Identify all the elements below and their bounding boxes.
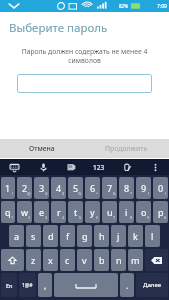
button[interactable]: c <box>60 249 75 271</box>
staticText: 6 <box>96 215 99 220</box>
staticText: 2 <box>22 182 28 194</box>
button[interactable]: 1 <box>1 177 15 199</box>
staticText: 3 <box>39 182 45 194</box>
staticText: w <box>21 206 29 218</box>
button[interactable]: l <box>145 225 160 247</box>
staticText: u <box>107 206 113 218</box>
button[interactable]: i <box>119 201 134 223</box>
button[interactable]: n <box>111 249 126 271</box>
button[interactable]: En <box>1 273 17 297</box>
staticText: 1 <box>5 182 11 194</box>
button[interactable]: z <box>26 249 41 271</box>
button[interactable]: Продолжить <box>84 139 169 158</box>
button[interactable]: Далее <box>136 273 168 297</box>
staticText: k <box>133 230 138 242</box>
button[interactable]: o <box>136 201 151 223</box>
button[interactable]: b <box>94 249 109 271</box>
button[interactable]: 6 <box>85 177 100 199</box>
staticText: j <box>117 230 120 242</box>
staticText: % <box>78 191 82 196</box>
staticText: v <box>82 254 87 266</box>
staticText: s <box>31 230 36 242</box>
button[interactable]: . <box>120 273 134 297</box>
button[interactable]: a <box>9 225 24 247</box>
staticText: En <box>6 282 13 289</box>
staticText: p <box>158 206 164 218</box>
staticText: ^ <box>96 191 99 196</box>
button[interactable]: t <box>68 201 83 223</box>
staticText: 8 <box>130 215 133 220</box>
button[interactable]: w <box>17 201 32 223</box>
button[interactable]: Clipboard <box>113 159 141 175</box>
button[interactable]: 5 <box>68 177 83 199</box>
button[interactable]: 8 <box>119 177 134 199</box>
button[interactable]: 2 <box>17 177 32 199</box>
staticText: d <box>48 230 54 242</box>
button[interactable]: u <box>102 201 117 223</box>
staticText: ( <box>148 191 150 196</box>
staticText: Отмена <box>29 144 55 153</box>
button[interactable]: 1@# <box>19 273 36 297</box>
button[interactable]: q <box>1 201 15 223</box>
button[interactable]: j <box>111 225 126 247</box>
button[interactable]: Voice input <box>29 159 57 175</box>
staticText: h <box>99 230 105 242</box>
button[interactable]: f <box>60 225 75 247</box>
staticText: Далее <box>143 281 162 289</box>
button[interactable] <box>17 74 152 93</box>
button[interactable]: 3 <box>34 177 49 199</box>
staticText: n <box>116 254 122 266</box>
staticText: 0 <box>164 215 167 220</box>
staticText: Продолжить <box>105 144 148 153</box>
button[interactable]: d <box>43 225 58 247</box>
staticText: 2 <box>28 215 31 220</box>
button[interactable]: Translate <box>57 159 85 175</box>
button[interactable]: y <box>85 201 100 223</box>
staticText: g <box>82 230 88 242</box>
staticText: 7 <box>107 182 113 194</box>
staticText: 0 <box>158 182 164 194</box>
button[interactable]: 0 <box>153 177 168 199</box>
button[interactable]: e <box>34 201 49 223</box>
button[interactable]: p <box>153 201 168 223</box>
button[interactable]: m <box>128 249 143 271</box>
staticText: 3 <box>45 215 48 220</box>
button[interactable]: k <box>128 225 143 247</box>
button[interactable]: , <box>38 273 52 297</box>
button[interactable]: 9 <box>136 177 151 199</box>
staticText: 9 <box>147 215 150 220</box>
staticText: Выберите пароль <box>9 20 108 36</box>
button[interactable]: 123 <box>85 159 113 175</box>
staticText: 4 <box>56 182 62 194</box>
staticText: o <box>141 206 147 218</box>
staticText: 5 <box>79 215 82 220</box>
staticText: 8 <box>124 182 130 194</box>
button[interactable]: Space <box>54 273 118 297</box>
button[interactable]: 7 <box>102 177 117 199</box>
button[interactable]: r <box>51 201 66 223</box>
staticText: i <box>125 206 128 218</box>
staticText: a <box>14 230 20 242</box>
staticText: q <box>5 206 11 218</box>
button[interactable]: Keyboard layout <box>0 159 29 175</box>
button[interactable]: Shift <box>1 249 24 271</box>
staticText: e <box>39 206 45 218</box>
staticText: . <box>126 279 129 291</box>
button[interactable]: x <box>43 249 58 271</box>
staticText: f <box>66 230 70 242</box>
button[interactable]: More options <box>141 159 169 175</box>
staticText: $ <box>62 191 65 196</box>
button[interactable]: s <box>26 225 41 247</box>
button[interactable]: Backspace <box>145 249 168 271</box>
staticText: 4 <box>62 215 65 220</box>
staticText: 123 <box>93 163 105 172</box>
button[interactable]: g <box>77 225 92 247</box>
button[interactable]: 4 <box>51 177 66 199</box>
staticText: , <box>44 279 47 291</box>
button[interactable]: h <box>94 225 109 247</box>
staticText: b <box>99 254 105 266</box>
button[interactable]: Отмена <box>0 139 84 158</box>
button[interactable]: v <box>77 249 92 271</box>
staticText: & <box>113 191 116 196</box>
staticText: 1 <box>11 215 14 220</box>
